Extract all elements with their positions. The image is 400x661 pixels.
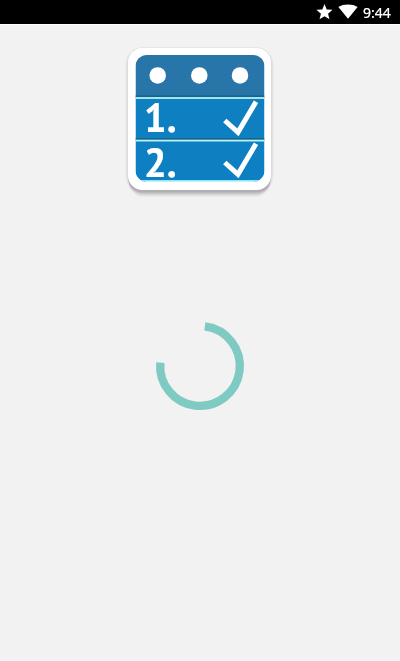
button[interactable]: Checklist app icon bbox=[128, 48, 271, 190]
staticText: 2. bbox=[144, 136, 177, 188]
staticText: 9:44 bbox=[363, 3, 391, 22]
other: Wi-Fi bbox=[338, 4, 358, 19]
staticText: 1. bbox=[144, 91, 177, 143]
other: Starred notification bbox=[316, 4, 333, 20]
